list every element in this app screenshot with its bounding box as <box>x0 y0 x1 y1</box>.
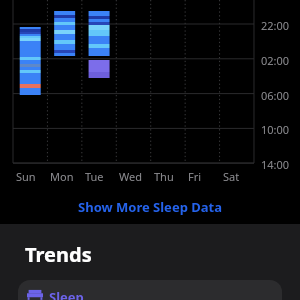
staticText: Show More Sleep Data <box>78 198 222 216</box>
staticText: Mon <box>50 169 74 184</box>
button[interactable]: Sleep <box>18 280 282 300</box>
staticText: 14:00 <box>261 157 290 172</box>
staticText: Tue <box>85 169 104 184</box>
staticText: Fri <box>188 169 202 184</box>
staticText: 22:00 <box>261 18 290 33</box>
staticText: Trends <box>25 241 92 268</box>
button[interactable]: Show More Sleep Data <box>0 197 300 217</box>
staticText: Sun <box>16 169 36 184</box>
staticText: Wed <box>119 169 142 184</box>
staticText: Thu <box>154 169 174 184</box>
staticText: 06:00 <box>261 88 290 103</box>
staticText: Sat <box>223 169 240 184</box>
staticText: 02:00 <box>261 53 290 68</box>
staticText: 10:00 <box>261 122 290 137</box>
staticText: Sleep <box>49 288 84 300</box>
